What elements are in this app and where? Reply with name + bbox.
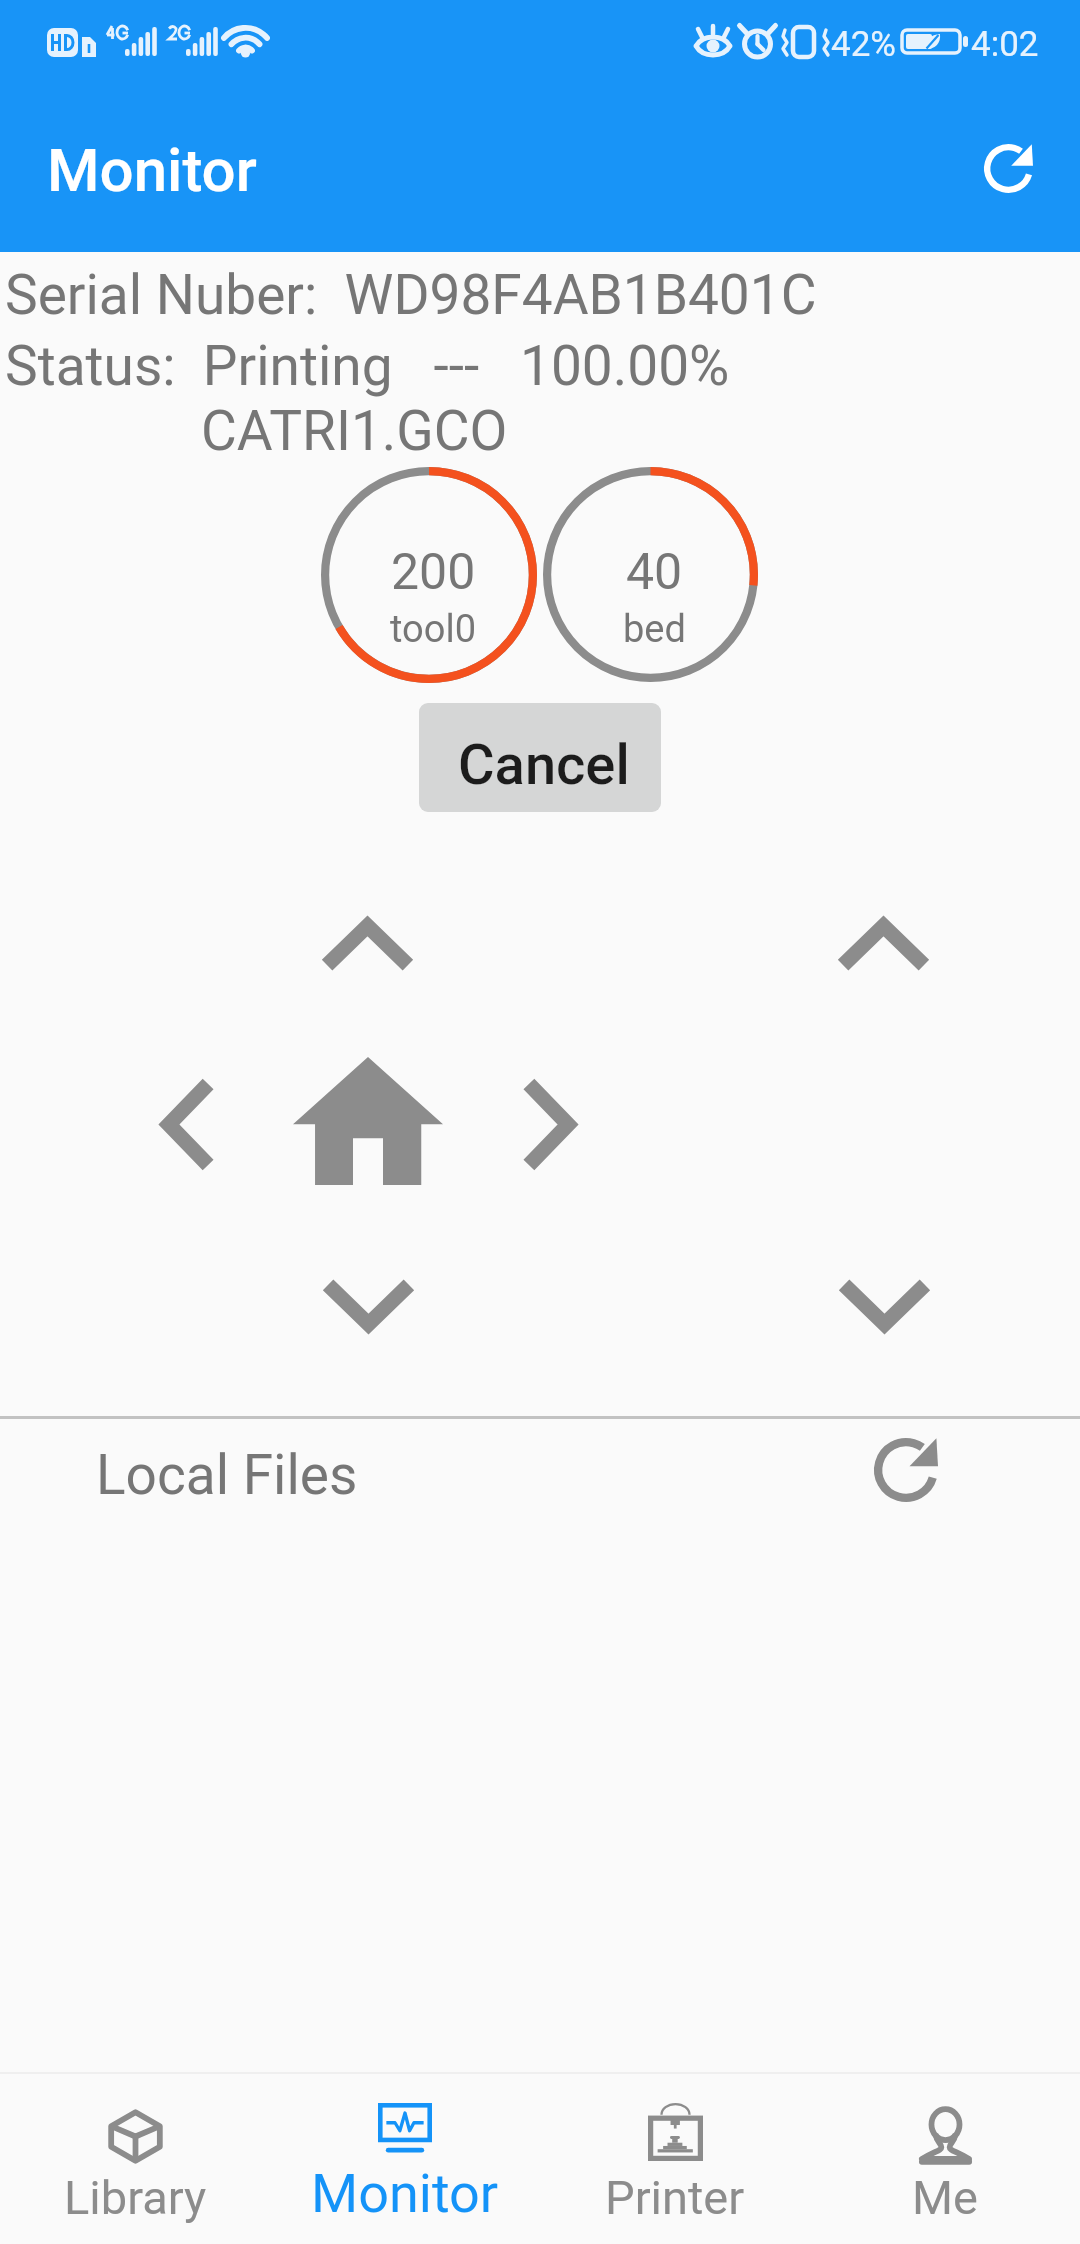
button[interactable]: Move up [321,914,414,971]
button[interactable]: Z down [838,1279,931,1336]
staticText: Library [64,2170,207,2225]
button[interactable]: Home [293,1057,443,1185]
button[interactable]: Cancel [419,703,661,812]
staticText: 40 [626,543,683,602]
staticText: Monitor [311,2162,499,2225]
staticText: Serial Nuber: WD98F4AB1B401C [5,263,817,327]
staticText: Printer [605,2170,745,2225]
button[interactable]: Refresh local files [858,1422,954,1518]
button[interactable]: Me [810,2074,1080,2244]
staticText: Local Files [96,1443,358,1507]
staticText: Cancel [458,732,630,798]
button[interactable]: Move down [322,1279,415,1336]
button[interactable]: Refresh [960,120,1056,216]
button[interactable]: Library [0,2074,270,2244]
staticText: bed [623,607,686,652]
button[interactable]: Local Files [0,1419,1080,1527]
staticText: 4:02 [971,24,1039,65]
button[interactable]: Move left [157,1078,214,1171]
button[interactable]: tool0 temperature 200 [321,467,537,683]
staticText: tool0 [390,607,477,652]
staticText: 42% [831,24,896,65]
button[interactable]: Printer [540,2074,810,2244]
staticText: Status: Printing --- 100.00% [5,334,730,398]
button[interactable]: Move right [523,1078,580,1171]
button[interactable]: bed temperature 40 [543,467,758,682]
button[interactable]: Z up [837,914,930,971]
button[interactable]: Monitor [270,2074,540,2244]
staticText: CATRI1.GCO [201,399,508,463]
staticText: Monitor [47,135,257,205]
staticText: Me [912,2170,978,2225]
staticText: 200 [391,543,476,602]
